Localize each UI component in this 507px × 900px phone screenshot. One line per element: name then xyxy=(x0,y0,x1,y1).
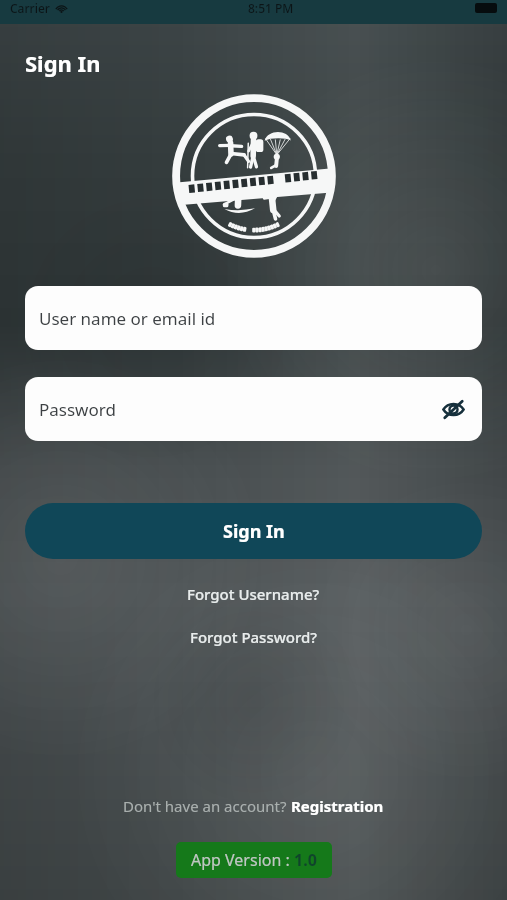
staticText: Carrier xyxy=(10,0,50,16)
staticText: 8:51 PM xyxy=(248,0,294,16)
staticText: Forgot Username? xyxy=(187,584,320,604)
staticText: User name or email id xyxy=(39,307,216,330)
staticText: Password xyxy=(39,398,116,421)
button[interactable]: Forgot Username? xyxy=(177,581,330,607)
staticText: Don't have an account? xyxy=(123,796,291,816)
button[interactable]: Sign In xyxy=(25,503,482,559)
button[interactable]: Registration xyxy=(291,796,384,816)
staticText: 1.0 xyxy=(294,849,317,871)
button[interactable]: Forgot Password? xyxy=(180,624,328,650)
staticText: Registration xyxy=(291,796,384,816)
staticText: Forgot Password? xyxy=(190,627,318,647)
button[interactable]: Show password xyxy=(436,392,470,426)
staticText: App Version : xyxy=(191,849,294,871)
button[interactable]: User name or email id xyxy=(25,286,482,350)
staticText: Sign In xyxy=(223,519,285,544)
button[interactable]: App Version : xyxy=(176,842,332,878)
button[interactable]: Password xyxy=(25,377,482,441)
staticText: Sign In xyxy=(25,48,101,78)
